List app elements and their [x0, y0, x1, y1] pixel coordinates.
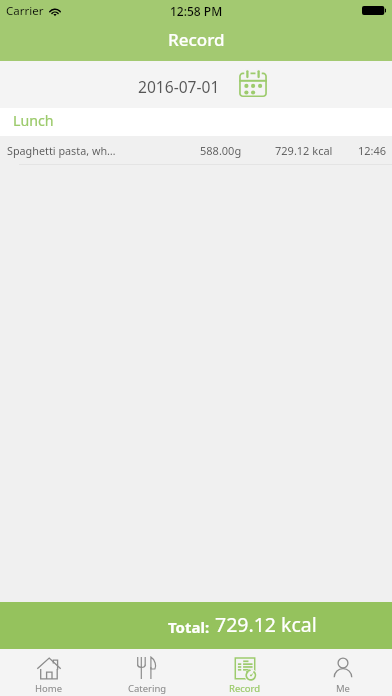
button[interactable]: Spaghetti pasta, wh… [0, 136, 392, 165]
staticText: Lunch [13, 111, 54, 130]
staticText: Carrier [6, 3, 44, 19]
staticText: Catering [128, 682, 167, 695]
staticText: 588.00g [200, 143, 242, 158]
button[interactable]: Me [294, 649, 392, 696]
staticText: Home [35, 682, 63, 695]
staticText: 12:46 [358, 143, 387, 158]
button[interactable]: Home [0, 649, 98, 696]
staticText: 12:58 PM [170, 3, 223, 19]
staticText: Spaghetti pasta, wh… [7, 143, 116, 158]
staticText: Record [229, 682, 261, 695]
staticText: Me [336, 682, 350, 695]
button[interactable]: Catering [98, 649, 196, 696]
button[interactable]: 2016-07-01 [0, 61, 392, 108]
staticText: 729.12 kcal [215, 611, 317, 638]
staticText: 2016-07-01 [138, 76, 220, 97]
staticText: 729.12 kcal [275, 143, 333, 158]
staticText: Record [168, 28, 225, 51]
staticText: Total: [168, 617, 210, 637]
button[interactable]: Record [196, 649, 294, 696]
button[interactable]: Pick date [238, 71, 268, 99]
